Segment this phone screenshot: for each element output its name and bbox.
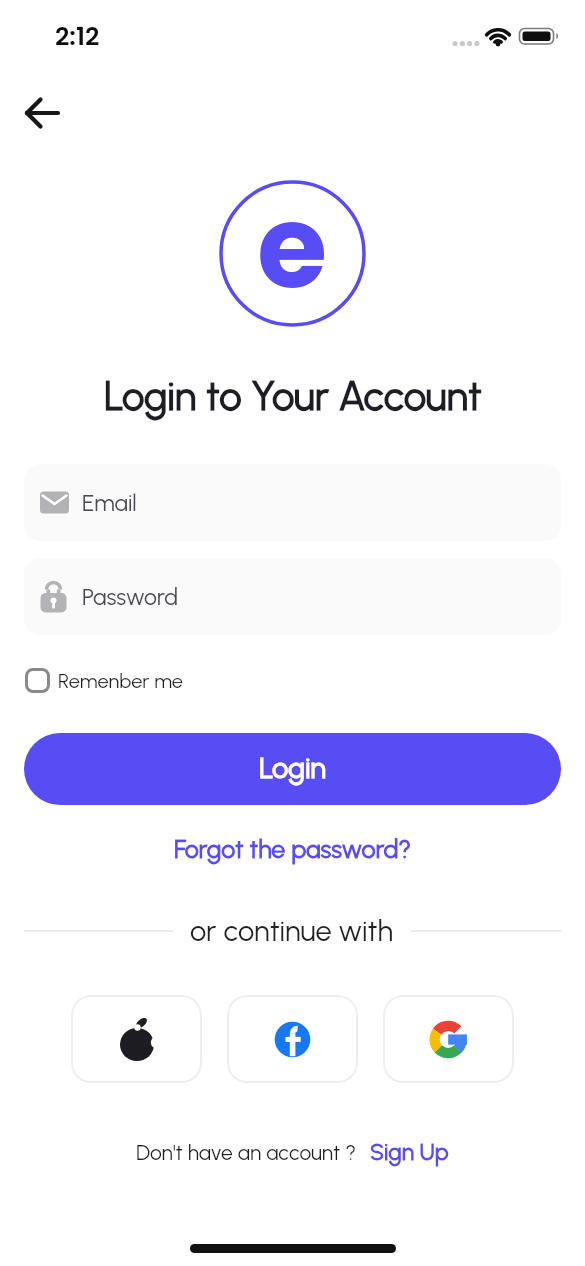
button[interactable]: [20, 91, 64, 135]
button[interactable]: Sign Up: [370, 1138, 449, 1166]
staticText: Password: [82, 583, 179, 611]
button[interactable]: Login: [24, 733, 561, 805]
button[interactable]: [383, 995, 514, 1083]
staticText: Login: [259, 750, 326, 785]
button[interactable]: Password: [24, 558, 561, 635]
button[interactable]: Remenber me: [25, 668, 183, 693]
staticText: Email: [82, 489, 137, 517]
staticText: 2:12: [55, 19, 100, 54]
staticText: or continue with: [190, 913, 394, 948]
staticText: Login to Your Account: [104, 372, 482, 420]
button[interactable]: [71, 995, 202, 1083]
staticText: Don't have an account ?: [136, 1140, 356, 1165]
staticText: e: [257, 167, 328, 314]
button[interactable]: Email: [24, 464, 561, 541]
button[interactable]: [227, 995, 358, 1083]
button[interactable]: Forgot the password?: [174, 834, 412, 864]
staticText: Remenber me: [58, 669, 183, 693]
